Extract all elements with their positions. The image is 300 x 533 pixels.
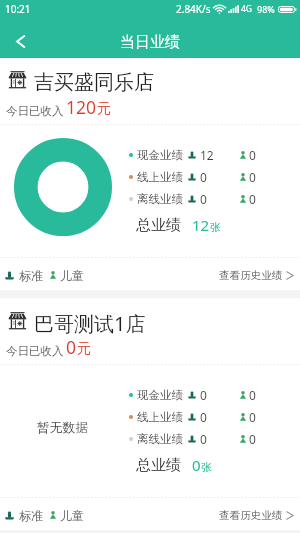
staticText: 4G (241, 3, 253, 15)
staticText: 2.84K/s (176, 2, 211, 16)
staticText: 离线业绩 (137, 192, 183, 206)
staticText: 元 (97, 100, 111, 118)
staticText: 0 (249, 409, 256, 425)
staticText: 0 (200, 387, 207, 403)
button[interactable]: 返回 (0, 18, 40, 58)
staticText: 0 (66, 335, 77, 359)
staticText: 线上业绩 (137, 170, 183, 184)
staticText: 总业绩 (136, 456, 181, 475)
staticText: 现金业绩 (137, 388, 183, 402)
staticText: 0 (249, 431, 256, 447)
staticText: 离线业绩 (137, 432, 183, 446)
staticText: 12 (192, 215, 210, 235)
staticText: 12 (200, 147, 214, 163)
staticText: 标准 (19, 508, 43, 523)
staticText: 0 (200, 431, 207, 447)
staticText: 张 (201, 460, 212, 474)
staticText: 0 (200, 409, 207, 425)
staticText: 现金业绩 (137, 148, 183, 162)
staticText: 查看历史业绩 (219, 269, 283, 282)
staticText: 元 (77, 340, 91, 358)
staticText: 0 (249, 387, 256, 403)
staticText: 查看历史业绩 (219, 509, 283, 522)
staticText: 0 (249, 169, 256, 185)
staticText: 0 (249, 147, 256, 163)
staticText: 总业绩 (136, 216, 181, 235)
staticText: 98% (257, 3, 275, 15)
staticText: 120 (66, 95, 97, 119)
staticText: 暂无数据 (37, 420, 89, 436)
staticText: 10:21 (5, 2, 31, 16)
staticText: 今日已收入 (6, 104, 64, 118)
staticText: 今日已收入 (6, 344, 64, 358)
staticText: 巴哥测试1店 (34, 310, 146, 337)
staticText: 张 (210, 220, 221, 234)
button[interactable]: 查看历史业绩 (219, 269, 300, 282)
staticText: 线上业绩 (137, 410, 183, 424)
staticText: 0 (200, 191, 207, 207)
staticText: 0 (200, 169, 207, 185)
staticText: 儿童 (60, 508, 84, 523)
staticText: 当日业绩 (120, 33, 180, 52)
staticText: 0 (249, 191, 256, 207)
staticText: 标准 (19, 268, 43, 283)
staticText: 吉买盛同乐店 (34, 70, 154, 95)
staticText: 儿童 (60, 268, 84, 283)
staticText: 0 (192, 455, 201, 475)
button[interactable]: 查看历史业绩 (219, 509, 300, 522)
